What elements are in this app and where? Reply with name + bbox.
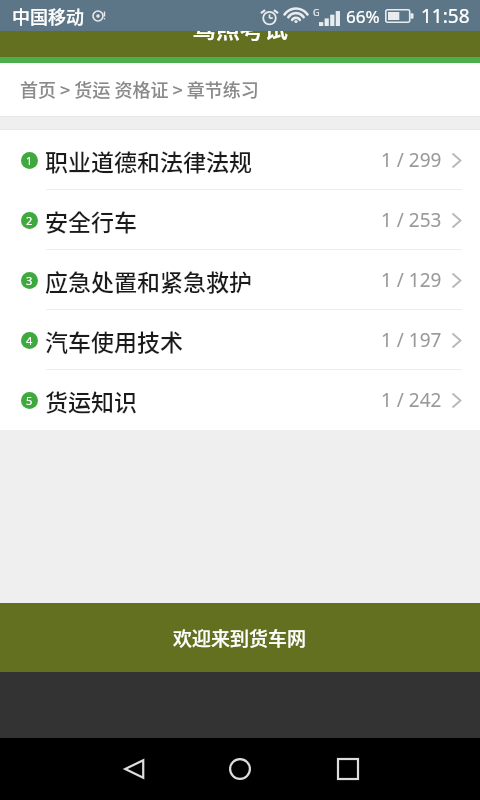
staticText: 中国移动 — [12, 3, 84, 29]
staticText: 66% — [346, 5, 380, 28]
staticText: 汽车使用技术 — [45, 324, 183, 357]
staticText: 1 / 129 — [381, 267, 442, 293]
button[interactable]: 2 — [0, 190, 480, 250]
button[interactable]: Back — [112, 747, 156, 791]
staticText: 1 / 299 — [381, 147, 442, 173]
staticText: 1 / 197 — [381, 327, 442, 353]
staticText: G — [313, 6, 320, 18]
staticText: 职业道德和法律法规 — [45, 144, 252, 177]
staticText: 1 / 242 — [381, 387, 442, 413]
staticText: 驾照考试 — [192, 9, 288, 44]
staticText: 3 — [26, 273, 33, 288]
button[interactable]: 1 — [0, 130, 480, 190]
staticText: 应急处置和紧急救护 — [45, 264, 252, 297]
staticText: 2 — [26, 213, 33, 228]
staticText: 1 / 253 — [381, 207, 442, 233]
staticText: 4 — [26, 333, 33, 348]
staticText: 1 — [26, 153, 33, 168]
staticText: 欢迎来到货车网 — [173, 624, 307, 652]
button[interactable]: 4 — [0, 310, 480, 370]
staticText: 货运知识 — [45, 384, 137, 417]
staticText: 首页 > 货运 资格证 > 章节练习 — [20, 76, 259, 102]
button[interactable]: Home — [218, 747, 262, 791]
button[interactable]: 3 — [0, 250, 480, 310]
staticText: 5 — [26, 393, 33, 408]
button[interactable]: 5 — [0, 370, 480, 430]
button[interactable]: 欢迎来到货车网 — [0, 603, 480, 672]
staticText: 11:58 — [421, 3, 470, 29]
staticText: 安全行车 — [45, 204, 137, 237]
button[interactable]: Recents — [326, 747, 370, 791]
